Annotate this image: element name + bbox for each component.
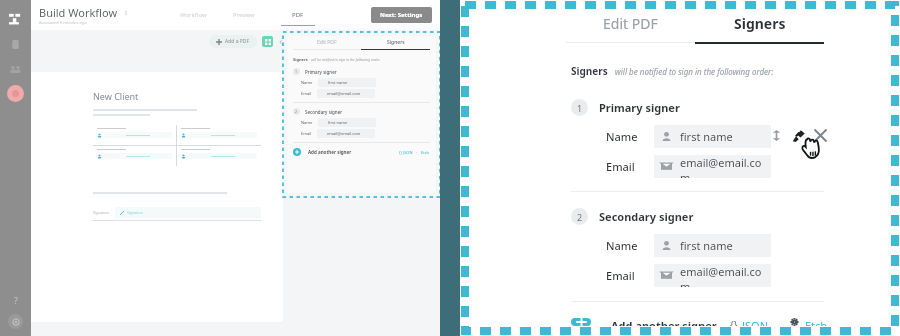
- staticText: Signature: [127, 210, 143, 215]
- staticText: Email: [606, 159, 635, 174]
- button[interactable]: Edit: [790, 127, 806, 143]
- staticText: Name: [606, 238, 638, 253]
- staticText: ?: [14, 294, 18, 306]
- staticText: Edit PDF: [603, 14, 658, 33]
- staticText: Signers: [734, 14, 786, 33]
- button[interactable]: Preview: [233, 11, 255, 25]
- staticText: 1: [295, 69, 298, 74]
- staticText: 1: [577, 102, 583, 114]
- button[interactable]: Add another signer: [571, 318, 591, 326]
- button[interactable]: Edit PDF: [566, 14, 695, 33]
- staticText: Email: [301, 91, 312, 96]
- button[interactable]: 1: [571, 99, 680, 116]
- staticText: Primary signer: [599, 100, 680, 115]
- staticText: email@email.com: [680, 155, 771, 178]
- staticText: Autosaved 5 minutes ago: [39, 20, 87, 25]
- button[interactable]: first name: [318, 118, 376, 127]
- button[interactable]: 2: [571, 208, 694, 225]
- button[interactable]: Signers: [695, 14, 824, 33]
- staticText: 2: [295, 109, 298, 114]
- staticText: Build Workflow: [39, 5, 118, 20]
- button[interactable]: Add a PDF: [209, 35, 257, 48]
- button[interactable]: Etch: [789, 318, 828, 326]
- button[interactable]: first name: [654, 125, 771, 148]
- staticText: will be notified to sign in the followin…: [311, 57, 381, 62]
- button[interactable]: email@email.com: [317, 89, 375, 98]
- staticText: Preview: [233, 11, 255, 19]
- staticText: Email: [606, 268, 635, 283]
- button[interactable]: PDF: [281, 11, 315, 26]
- button[interactable]: {}: [730, 318, 768, 326]
- staticText: Etch: [805, 318, 828, 326]
- staticText: will be notified to sign in the followin…: [615, 66, 774, 77]
- button[interactable]: Remove: [812, 127, 828, 143]
- button[interactable]: Team: [9, 62, 22, 75]
- staticText: first name: [328, 80, 348, 85]
- staticText: Name: [301, 80, 313, 85]
- staticText: first name: [680, 129, 733, 144]
- staticText: first name: [680, 238, 733, 253]
- button[interactable]: first name: [318, 78, 376, 87]
- button[interactable]: Add: [293, 148, 301, 156]
- staticText: Workflow: [180, 11, 207, 19]
- button[interactable]: Signers: [361, 39, 430, 46]
- staticText: Next: Settings: [380, 11, 423, 19]
- button[interactable]: More options: [122, 9, 130, 17]
- staticText: email@email.com: [327, 131, 361, 136]
- button[interactable]: Documents: [9, 38, 22, 51]
- button[interactable]: Profile: [7, 85, 24, 102]
- button[interactable]: Workflow: [180, 11, 207, 25]
- button[interactable]: Reorder: [768, 127, 784, 143]
- staticText: first name: [328, 120, 348, 125]
- button[interactable]: email@email.com: [317, 129, 375, 138]
- staticText: Add another signer: [308, 149, 352, 155]
- staticText: email@email.com: [327, 91, 361, 96]
- button[interactable]: Settings: [8, 314, 23, 329]
- staticText: Secondary signer: [599, 209, 694, 224]
- button[interactable]: Help: [9, 293, 23, 307]
- button[interactable]: first name: [654, 234, 771, 257]
- staticText: Etch: [421, 150, 430, 155]
- staticText: Secondary signer: [305, 109, 343, 115]
- staticText: Email: [301, 131, 312, 136]
- staticText: Add a PDF: [225, 38, 250, 45]
- staticText: {} JSON: [399, 150, 413, 155]
- staticText: PDF: [292, 11, 304, 19]
- staticText: New Client: [93, 90, 139, 102]
- staticText: Name: [301, 120, 313, 125]
- button[interactable]: email@email.com: [654, 155, 771, 178]
- staticText: Edit PDF: [317, 39, 337, 46]
- staticText: Add another signer: [611, 318, 717, 326]
- staticText: Signers: [571, 64, 608, 78]
- staticText: Name: [606, 129, 638, 144]
- staticText: ·: [416, 150, 418, 155]
- button[interactable]: Add another signer: [611, 318, 717, 326]
- button[interactable]: Edit PDF: [293, 39, 361, 46]
- button[interactable]: Next: Settings: [371, 7, 432, 23]
- staticText: Signature: [93, 210, 109, 215]
- staticText: 2: [577, 211, 583, 223]
- staticText: email@email.com: [680, 264, 771, 287]
- staticText: Signers: [293, 57, 308, 62]
- staticText: Signers: [387, 39, 405, 46]
- staticText: {}: [730, 318, 738, 326]
- staticText: Primary signer: [305, 69, 337, 75]
- button[interactable]: email@email.com: [654, 264, 771, 287]
- button[interactable]: Grid view: [262, 36, 273, 47]
- staticText: JSON: [742, 318, 768, 326]
- button[interactable]: Collapse: [277, 38, 285, 46]
- button[interactable]: Workflows: [8, 11, 24, 27]
